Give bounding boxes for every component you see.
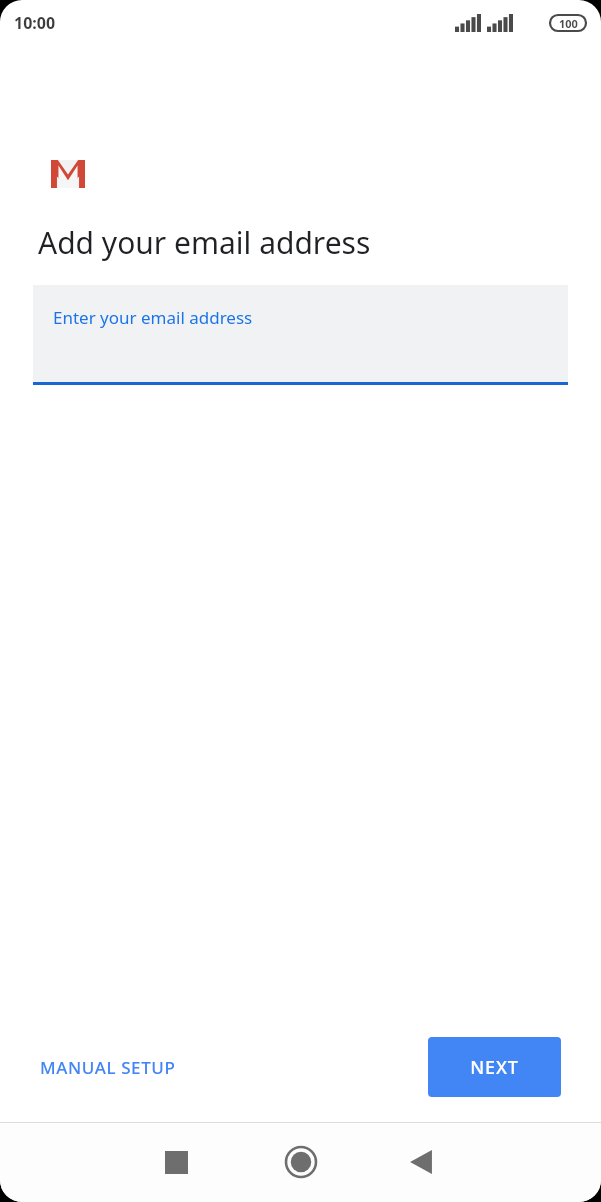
staticText: NEXT: [470, 1055, 519, 1080]
staticText: MANUAL SETUP: [40, 1056, 176, 1079]
button[interactable]: Recent apps: [150, 1136, 202, 1188]
button[interactable]: NEXT: [428, 1037, 561, 1097]
staticText: 10:00: [14, 12, 56, 34]
staticText: 100: [559, 16, 578, 31]
button[interactable]: MANUAL SETUP: [38, 1046, 178, 1089]
staticText: Add your email address: [38, 222, 371, 263]
button[interactable]: Enter your email address: [33, 285, 568, 385]
button[interactable]: Back: [395, 1136, 447, 1188]
button[interactable]: Home: [275, 1136, 327, 1188]
staticText: Enter your email address: [53, 306, 253, 329]
